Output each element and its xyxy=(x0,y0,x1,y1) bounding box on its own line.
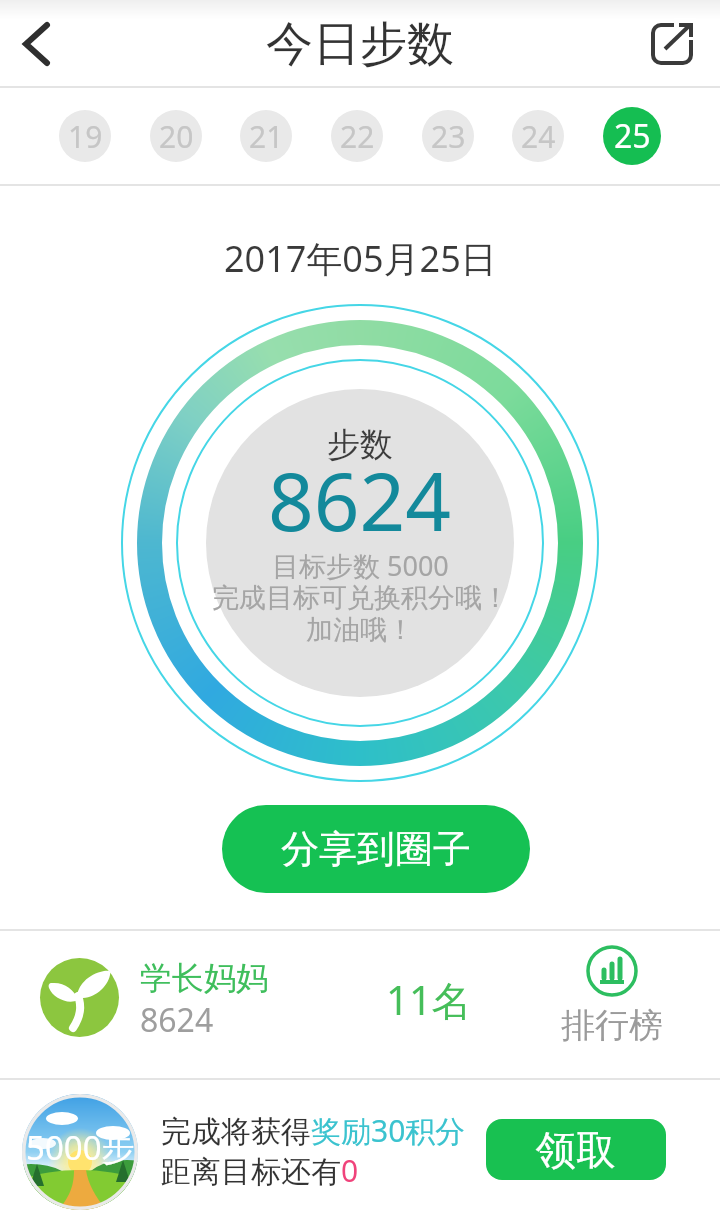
button[interactable] xyxy=(3,8,69,80)
button[interactable]: 23 xyxy=(422,110,474,162)
staticText: 今日步数 xyxy=(266,15,454,74)
staticText: 分享到圈子 xyxy=(281,825,471,873)
staticText: 20 xyxy=(159,116,194,157)
button[interactable]: 21 xyxy=(240,110,292,162)
staticText: 11名 xyxy=(386,972,472,1027)
button[interactable]: 25 xyxy=(603,107,661,165)
button[interactable]: 分享到圈子 xyxy=(222,805,530,893)
staticText: 8624 xyxy=(140,998,214,1042)
staticText: 25 xyxy=(614,114,651,158)
button[interactable]: 领取 xyxy=(486,1119,666,1180)
staticText: 2017年05月25日 xyxy=(224,234,497,283)
staticText: 5000步 xyxy=(26,1125,135,1170)
button[interactable]: 20 xyxy=(150,110,202,162)
staticText: 排行榜 xyxy=(561,1004,663,1047)
staticText: 23 xyxy=(431,116,466,157)
staticText: 19 xyxy=(68,116,103,157)
staticText: 目标步数 5000 xyxy=(272,547,449,584)
button[interactable] xyxy=(640,8,706,74)
staticText: 8624 xyxy=(268,445,452,554)
button[interactable]: 排行榜 xyxy=(556,937,668,1053)
button[interactable]: 5000步 xyxy=(22,1094,138,1210)
button[interactable] xyxy=(40,958,119,1037)
staticText: 完成将获得奖励30积分 xyxy=(161,1110,466,1151)
staticText: 距离目标还有0 xyxy=(161,1150,359,1191)
staticText: 完成目标可兑换积分哦！ xyxy=(212,581,509,615)
button[interactable]: 22 xyxy=(331,110,383,162)
button[interactable]: 24 xyxy=(512,110,564,162)
staticText: 学长妈妈 xyxy=(140,958,268,998)
staticText: 领取 xyxy=(536,1125,616,1175)
staticText: 24 xyxy=(521,116,556,157)
staticText: 加油哦！ xyxy=(306,613,414,647)
staticText: 21 xyxy=(249,116,284,157)
staticText: 22 xyxy=(340,116,375,157)
staticText: 步数 xyxy=(327,424,393,466)
button[interactable]: 19 xyxy=(59,110,111,162)
